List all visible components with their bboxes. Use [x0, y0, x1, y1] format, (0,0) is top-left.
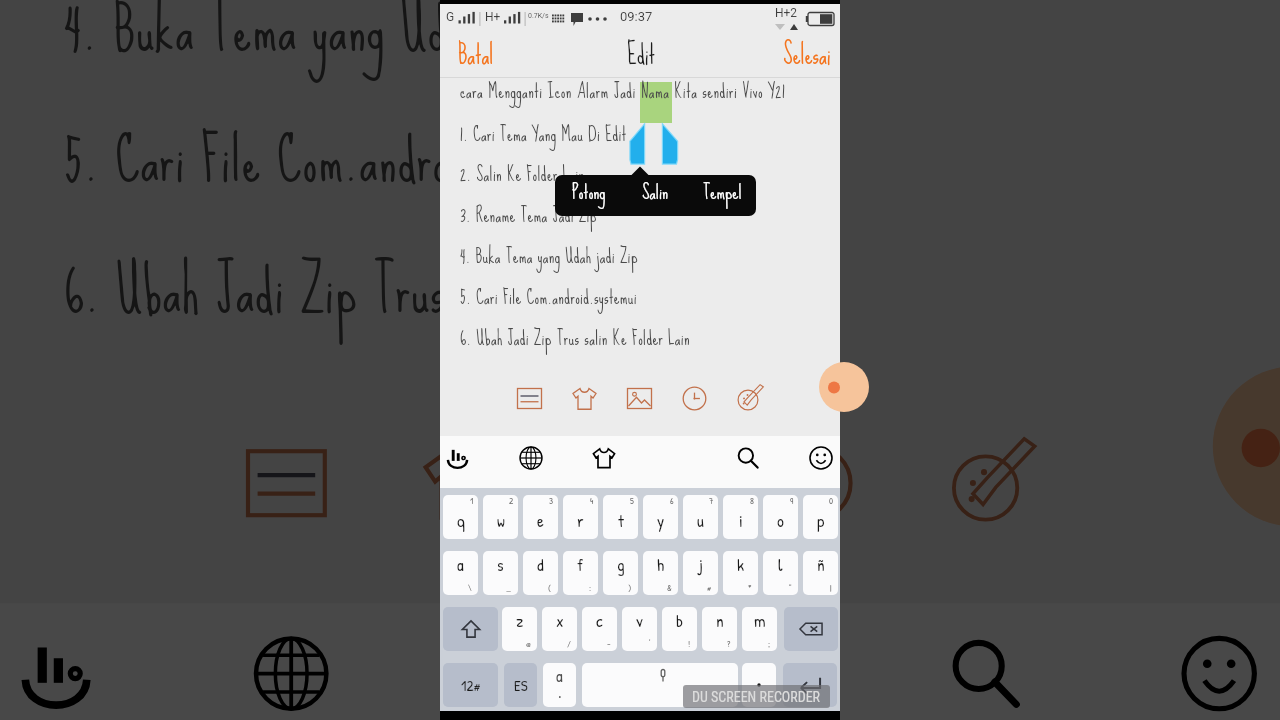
- button[interactable]: Language: [234, 616, 349, 720]
- staticText: q: [457, 509, 465, 532]
- button[interactable]: 9: [763, 495, 798, 539]
- staticText: 7: [709, 495, 714, 507]
- staticText: &: [667, 582, 672, 594]
- button[interactable]: Insert time: [672, 376, 716, 420]
- button[interactable]: Insert picture: [617, 376, 661, 420]
- button[interactable]: Insert time: [742, 411, 883, 552]
- button[interactable]: g: [603, 551, 638, 595]
- button[interactable]: n: [702, 607, 737, 651]
- staticText: Tempel: [703, 175, 742, 211]
- button[interactable]: 12#: [443, 663, 498, 707]
- button[interactable]: Backspace: [784, 607, 838, 651]
- staticText: ES: [514, 675, 528, 695]
- button[interactable]: 4: [563, 495, 598, 539]
- button[interactable]: 8: [723, 495, 758, 539]
- staticText: 6: [670, 495, 674, 507]
- staticText: f: [577, 553, 584, 576]
- staticText: y: [657, 509, 665, 532]
- button[interactable]: a: [443, 551, 478, 595]
- staticText: !: [688, 638, 691, 650]
- button[interactable]: Text style: [507, 376, 551, 420]
- button[interactable]: 1: [443, 495, 478, 539]
- button[interactable]: Handwriting: [440, 440, 476, 476]
- button[interactable]: 3: [523, 495, 558, 539]
- button[interactable]: l: [763, 551, 798, 595]
- staticText: 12#: [461, 675, 481, 695]
- button[interactable]: Batal: [440, 32, 512, 77]
- staticText: 4: [590, 495, 594, 507]
- staticText: z: [516, 609, 524, 632]
- staticText: Potong: [572, 175, 606, 211]
- button[interactable]: 5: [603, 495, 638, 539]
- button[interactable]: Theme: [467, 616, 582, 720]
- staticText: w: [497, 509, 505, 532]
- staticText: #: [707, 582, 712, 594]
- button[interactable]: z: [502, 607, 537, 651]
- button[interactable]: k: [723, 551, 758, 595]
- staticText: H+: [485, 10, 501, 24]
- button[interactable]: Language: [513, 440, 549, 476]
- staticText: n: [716, 609, 724, 632]
- staticText: j: [699, 553, 703, 576]
- button[interactable]: v: [622, 607, 657, 651]
- button[interactable]: Enter: [783, 663, 837, 707]
- button[interactable]: Salin: [622, 175, 689, 216]
- button[interactable]: 6: [643, 495, 678, 539]
- button[interactable]: 2: [483, 495, 518, 539]
- staticText: DU SCREEN RECORDER: [692, 689, 821, 705]
- button[interactable]: a: [543, 663, 576, 707]
- staticText: Batal: [458, 31, 494, 76]
- button[interactable]: 0: [803, 495, 838, 539]
- button[interactable]: Theme: [586, 440, 622, 476]
- staticText: k: [737, 553, 745, 576]
- staticText: /: [567, 638, 571, 650]
- button[interactable]: Search: [928, 616, 1043, 720]
- button[interactable]: ñ: [803, 551, 838, 595]
- button[interactable]: Insert picture: [566, 411, 707, 552]
- staticText: (: [548, 582, 552, 594]
- staticText: i: [739, 509, 743, 532]
- button[interactable]: b: [662, 607, 697, 651]
- staticText: 9: [790, 495, 794, 507]
- staticText: -: [607, 638, 611, 650]
- staticText: 1: [470, 495, 474, 507]
- button[interactable]: Tempel: [689, 175, 756, 216]
- button[interactable]: Doodle: [727, 376, 771, 420]
- button[interactable]: s: [483, 551, 518, 595]
- staticText: u: [697, 509, 704, 532]
- staticText: 1. Cari Tema Yang Mau Di Edit: [460, 117, 627, 152]
- button[interactable]: ES: [504, 663, 537, 707]
- staticText: :: [589, 582, 592, 594]
- button[interactable]: Period: [742, 663, 776, 707]
- staticText: \: [468, 582, 472, 594]
- button[interactable]: Space: [582, 663, 738, 707]
- button[interactable]: 7: [683, 495, 718, 539]
- button[interactable]: Search: [730, 440, 766, 476]
- staticText: s: [497, 553, 504, 576]
- button[interactable]: h: [643, 551, 678, 595]
- button[interactable]: Text style: [214, 411, 355, 552]
- button[interactable]: Theme: [562, 376, 606, 420]
- staticText: *: [748, 582, 752, 594]
- staticText: d: [537, 553, 544, 576]
- staticText: 6. Ubah Jadi Zip Trus salin Ke Folder La…: [460, 321, 690, 356]
- button[interactable]: Handwriting: [0, 616, 115, 720]
- button[interactable]: Emoji: [803, 440, 839, 476]
- button[interactable]: Shift: [443, 607, 498, 651]
- button[interactable]: m: [742, 607, 777, 651]
- staticText: 6. Ubah Jadi Zip Trus salin Ke Folder La…: [64, 235, 800, 347]
- staticText: ': [649, 638, 651, 650]
- button[interactable]: Theme: [390, 411, 531, 552]
- button[interactable]: Selesai: [765, 32, 849, 77]
- button[interactable]: f: [563, 551, 598, 595]
- button[interactable]: Emoji: [1162, 616, 1277, 720]
- staticText: v: [636, 609, 643, 632]
- button[interactable]: c: [582, 607, 617, 651]
- staticText: 4. Buka Tema yang Udah jadi Zip: [460, 239, 638, 274]
- button[interactable]: j: [683, 551, 718, 595]
- button[interactable]: Potong: [555, 175, 622, 216]
- staticText: 5: [630, 495, 634, 507]
- button[interactable]: x: [542, 607, 577, 651]
- button[interactable]: d: [523, 551, 558, 595]
- button[interactable]: Doodle: [918, 411, 1059, 552]
